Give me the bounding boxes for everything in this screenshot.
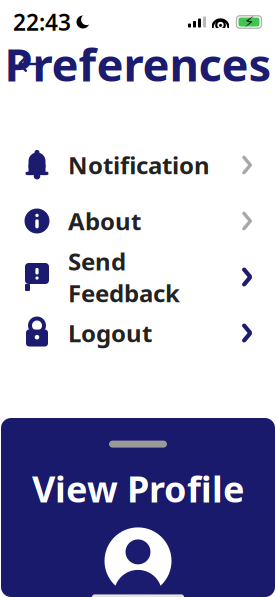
staticText: Logout xyxy=(68,317,152,349)
button[interactable]: Notification xyxy=(0,137,276,193)
staticText: Notification xyxy=(68,149,210,181)
button[interactable]: Back xyxy=(8,42,52,86)
button[interactable]: Logout xyxy=(0,305,276,361)
staticText: Preferences xyxy=(4,34,271,94)
staticText: View Profile xyxy=(32,465,244,512)
staticText: Send Feedback xyxy=(68,245,180,309)
button[interactable]: View Profile xyxy=(1,418,275,597)
staticText: About xyxy=(68,205,141,237)
button[interactable]: About xyxy=(0,193,276,249)
staticText: ⚡︎ xyxy=(244,14,254,30)
button[interactable]: Send Feedback xyxy=(0,249,276,305)
staticText: 22:43 xyxy=(13,7,71,37)
